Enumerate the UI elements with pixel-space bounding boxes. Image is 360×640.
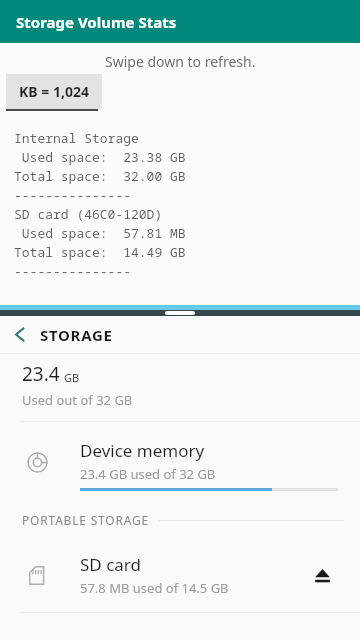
staticText: 23.4 GB used of 32 GB xyxy=(80,465,216,483)
staticText: SD card (46C0-120D) xyxy=(14,205,163,223)
staticText: Swipe down to refresh. xyxy=(105,52,256,71)
staticText: Used space: 23.38 GB xyxy=(14,148,186,166)
staticText: Total space: 32.00 GB xyxy=(14,167,186,185)
staticText: KB = 1,024 xyxy=(19,82,89,101)
staticText: --------------- xyxy=(14,262,132,280)
button[interactable]: Eject SD card xyxy=(304,557,340,593)
staticText: PORTABLE STORAGE xyxy=(22,512,149,528)
staticText: Used space: 57.81 MB xyxy=(14,224,186,242)
staticText: STORAGE xyxy=(40,325,113,345)
staticText: Device memory xyxy=(80,439,205,462)
button[interactable]: Back xyxy=(0,316,40,353)
button[interactable]: SD card xyxy=(0,538,360,612)
staticText: SD card xyxy=(80,553,141,576)
staticText: Total space: 14.49 GB xyxy=(14,243,186,261)
staticText: --------------- xyxy=(14,186,132,204)
staticText: 23.4 xyxy=(22,361,60,387)
staticText: Internal Storage xyxy=(14,129,139,147)
button[interactable]: Device memory xyxy=(0,422,360,502)
staticText: Storage Volume Stats xyxy=(16,12,177,32)
staticText: 57.8 MB used of 14.5 GB xyxy=(80,579,229,597)
staticText: Used out of 32 GB xyxy=(22,391,133,409)
button[interactable]: KB = 1,024 xyxy=(6,74,102,111)
staticText: GB xyxy=(64,370,80,385)
